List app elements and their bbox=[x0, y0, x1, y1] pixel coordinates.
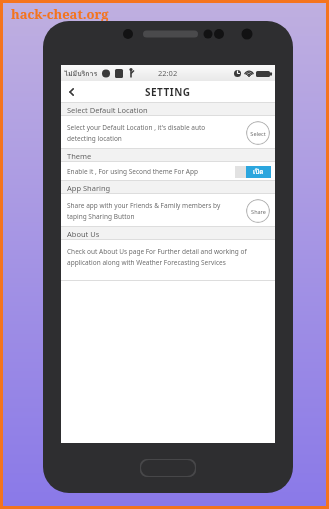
staticText: detecting location bbox=[67, 134, 122, 143]
staticText: application along with Weather Forecasti… bbox=[67, 258, 226, 267]
staticText: About Us bbox=[67, 229, 100, 239]
staticText: SETTING bbox=[145, 85, 191, 99]
staticText: Select your Default Location , it's disa… bbox=[67, 123, 206, 132]
staticText: Select Default Location bbox=[67, 105, 148, 115]
button[interactable]: Home bbox=[140, 459, 196, 477]
button[interactable]: Share bbox=[246, 199, 270, 223]
staticText: hack-cheat.org bbox=[11, 5, 109, 23]
staticText: Check out About Us page For Further deta… bbox=[67, 247, 247, 256]
staticText: Theme bbox=[67, 151, 92, 161]
staticText: ไม่มีบริการ bbox=[64, 68, 98, 79]
staticText: Select bbox=[250, 130, 266, 137]
button[interactable]: เปิด bbox=[235, 166, 271, 178]
staticText: Share bbox=[251, 208, 266, 215]
staticText: taping Sharing Button bbox=[67, 212, 135, 221]
staticText: Share app with your Friends & Family mem… bbox=[67, 201, 221, 210]
button[interactable]: Check out About Us page For Further deta… bbox=[61, 240, 275, 280]
staticText: 22:02 bbox=[158, 68, 178, 78]
staticText: Enable it , For using Second theme For A… bbox=[67, 167, 198, 176]
button[interactable]: Select bbox=[246, 121, 270, 145]
staticText: App Sharing bbox=[67, 183, 111, 193]
staticText: เปิด bbox=[253, 167, 264, 177]
button[interactable]: Back bbox=[61, 81, 83, 103]
